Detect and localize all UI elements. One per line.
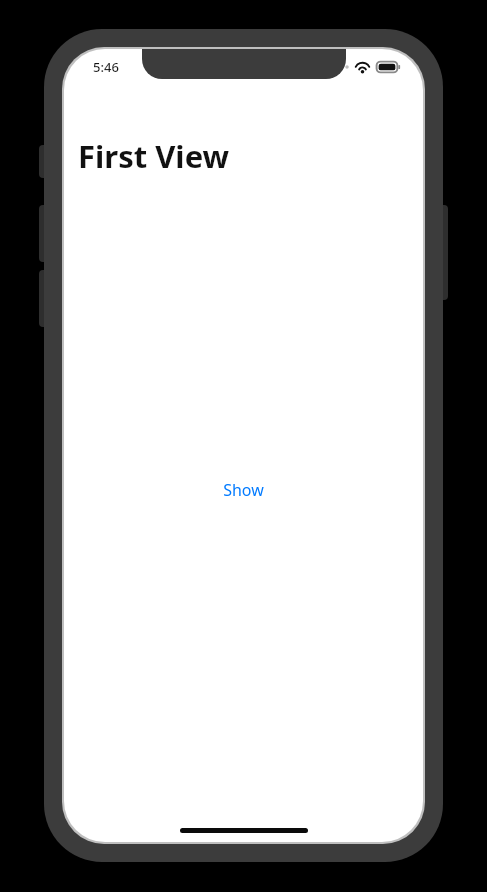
staticText: 5:46	[93, 58, 119, 76]
button[interactable]: Show	[209, 472, 278, 508]
staticText: First View	[78, 135, 230, 177]
staticText: Show	[223, 479, 264, 501]
